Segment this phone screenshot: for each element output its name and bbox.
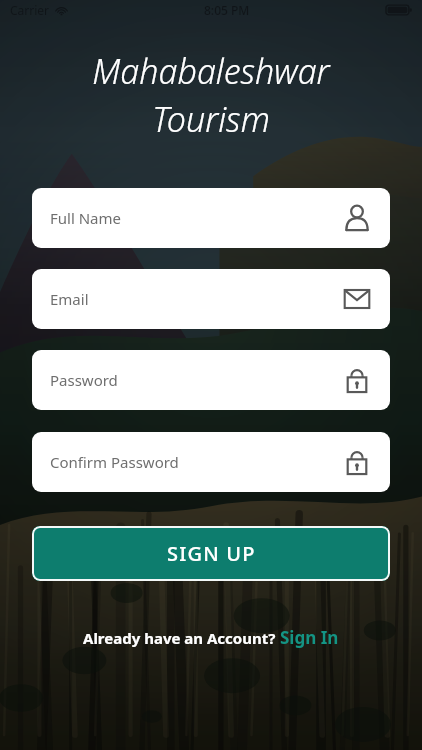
staticText: Full Name (50, 208, 121, 228)
staticText: Carrier (10, 2, 50, 18)
button[interactable]: Password (32, 350, 390, 410)
button[interactable]: Sign In (280, 626, 339, 649)
staticText: Email (50, 289, 89, 309)
staticText: SIGN UP (167, 540, 256, 567)
staticText: Tourism (152, 96, 270, 142)
staticText: Already have an Account? (83, 628, 280, 648)
staticText: Password (50, 370, 118, 390)
staticText: 8:05 PM (204, 2, 250, 18)
staticText: Sign In (280, 626, 339, 649)
staticText: Confirm Password (50, 452, 179, 472)
button[interactable]: Confirm Password (32, 432, 390, 492)
staticText: Mahabaleshwar (92, 48, 330, 94)
button[interactable]: Email (32, 269, 390, 329)
button[interactable]: Full Name (32, 188, 390, 248)
button[interactable]: SIGN UP (32, 526, 390, 581)
